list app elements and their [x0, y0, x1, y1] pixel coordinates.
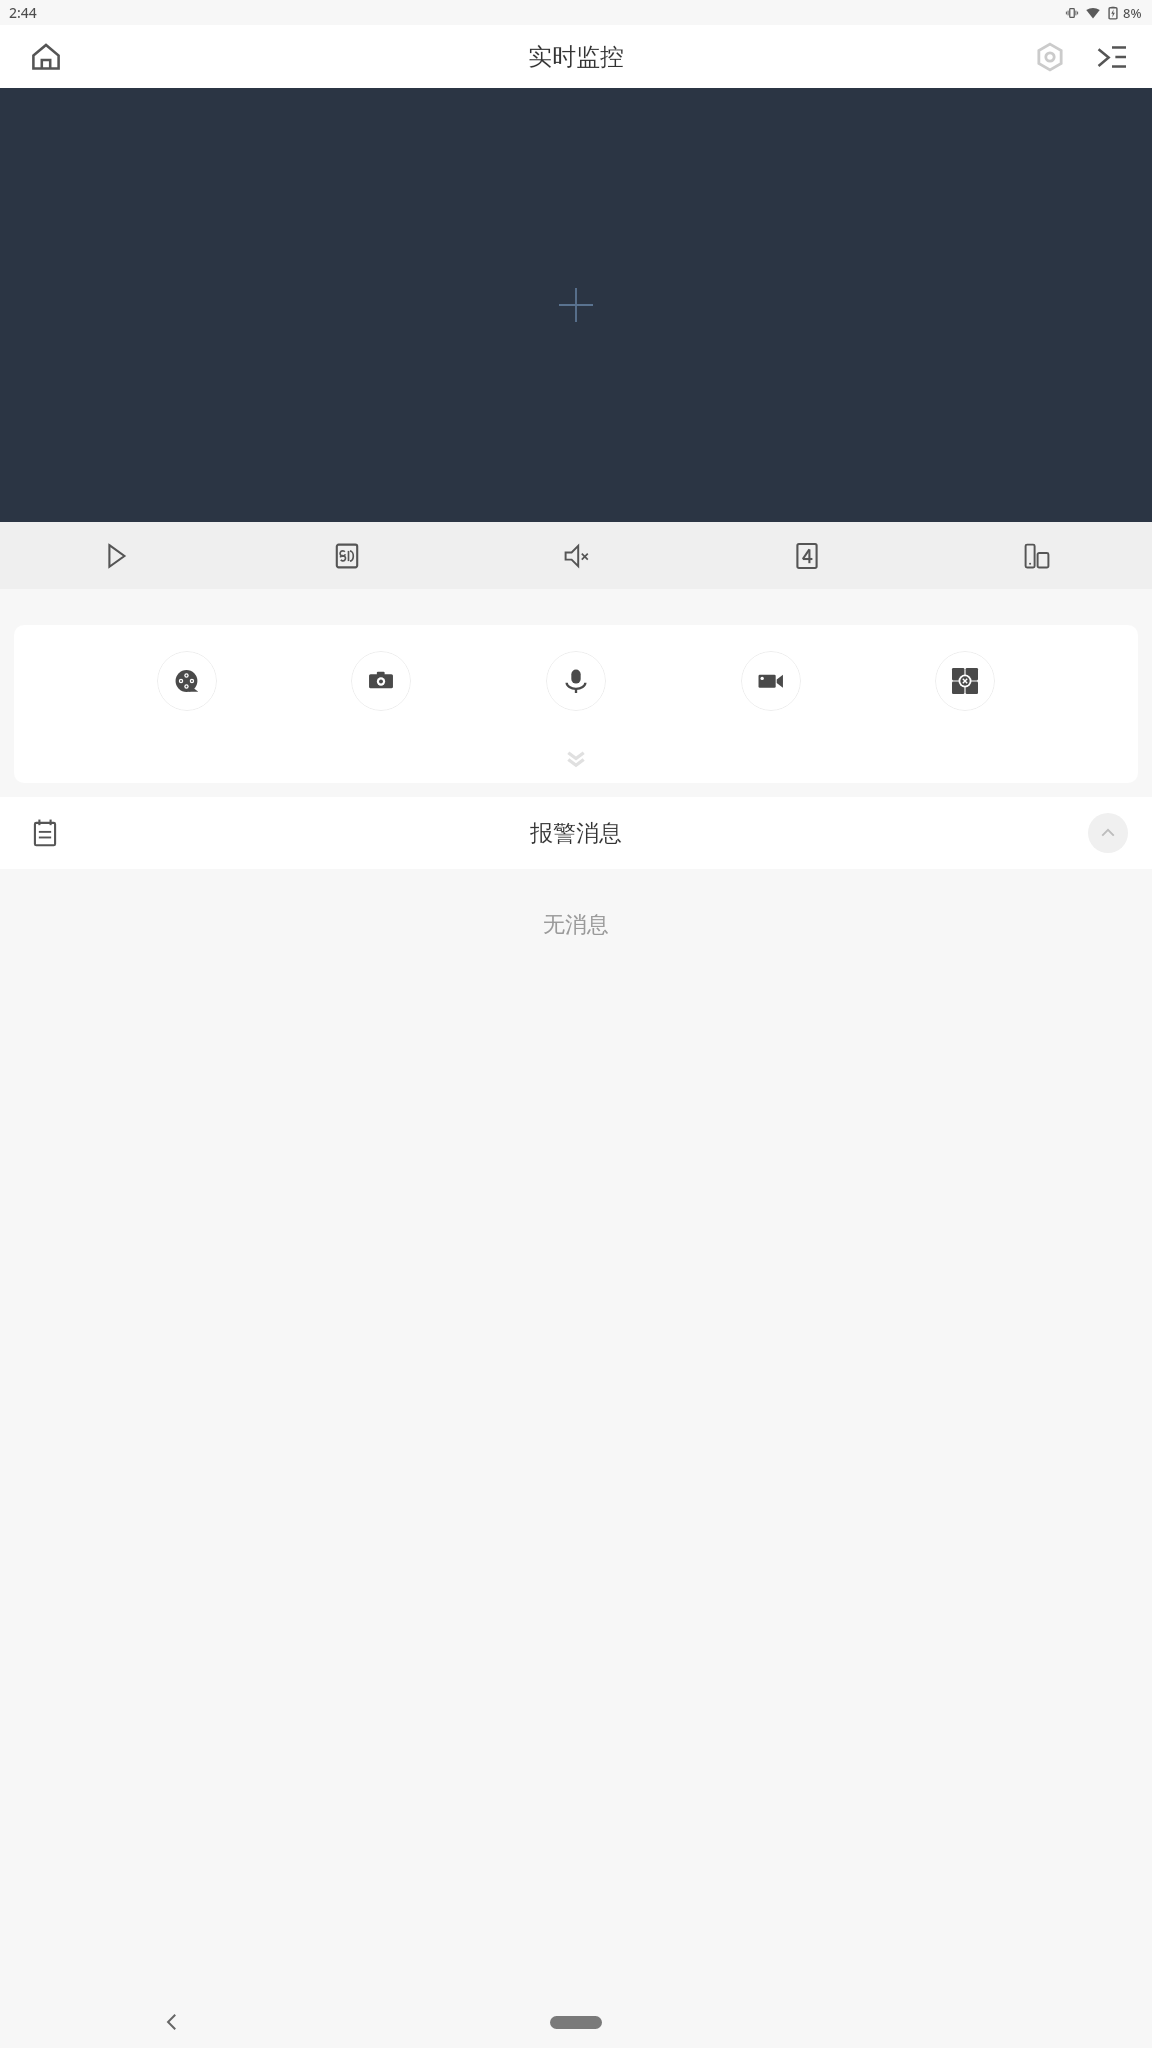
staticText: 报警消息	[530, 819, 622, 848]
button[interactable]: Snapshot	[351, 651, 411, 711]
button[interactable]: Zoom	[935, 651, 995, 711]
button[interactable]: Play	[0, 522, 231, 589]
staticText: 实时监控	[528, 42, 624, 72]
button[interactable]: Channel 4	[692, 522, 922, 589]
staticText: 无消息	[543, 911, 609, 939]
staticText: 8%	[1123, 4, 1142, 22]
button[interactable]: Settings	[1026, 33, 1074, 81]
button[interactable]: Collapse	[1088, 813, 1128, 853]
button[interactable]: Talk	[546, 651, 606, 711]
button[interactable]: Home	[22, 33, 70, 81]
staticText: 2:44	[9, 3, 37, 22]
button[interactable]: Menu	[1088, 33, 1136, 81]
button[interactable]: Record	[741, 651, 801, 711]
button[interactable]: Back	[150, 2000, 194, 2044]
button[interactable]: Rotate	[922, 522, 1152, 589]
button[interactable]: Home gesture	[550, 2016, 602, 2029]
button[interactable]: Quality SD	[231, 522, 462, 589]
button[interactable]: PTZ control	[157, 651, 217, 711]
button[interactable]: Mute	[462, 522, 692, 589]
button[interactable]: 报警消息	[0, 797, 1152, 869]
